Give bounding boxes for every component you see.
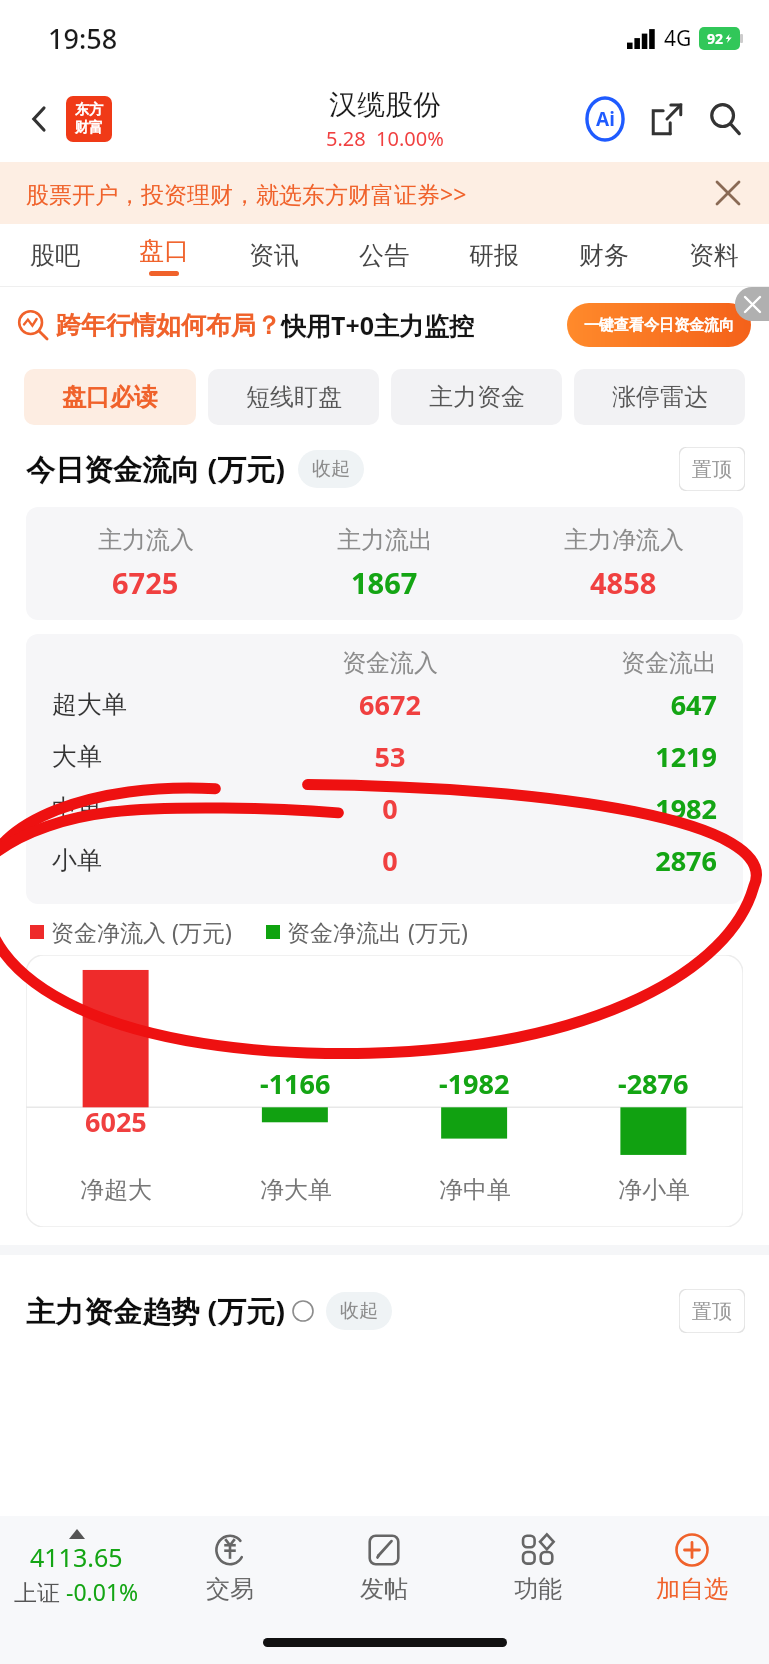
staticText: 19:58: [48, 20, 118, 57]
button[interactable]: 研报: [439, 224, 549, 286]
staticText: 6025: [85, 1103, 147, 1140]
button[interactable]: 发帖: [307, 1516, 461, 1620]
staticText: 6725: [112, 563, 179, 602]
staticText: 小单: [52, 845, 281, 876]
staticText: 647: [499, 686, 717, 723]
staticText: 2876: [499, 842, 717, 879]
staticText: 发帖: [360, 1574, 408, 1604]
staticText: 主力净流入: [564, 525, 684, 555]
staticText: 短线盯盘: [246, 382, 342, 412]
staticText: -1166: [260, 1065, 331, 1102]
staticText: 4113.65: [30, 1540, 123, 1574]
staticText: 92: [707, 29, 724, 48]
staticText: 加自选: [656, 1574, 728, 1604]
staticText: 置顶: [692, 457, 732, 482]
staticText: 1982: [499, 790, 717, 827]
staticText: 涨停雷达: [612, 382, 708, 412]
staticText: 6672: [281, 686, 499, 723]
button[interactable]: 一键查看今日资金流向: [567, 303, 751, 347]
staticText: 大单: [52, 741, 281, 772]
button[interactable]: 功能: [461, 1516, 615, 1620]
staticText: 收起: [340, 1299, 378, 1323]
staticText: 公告: [359, 240, 409, 271]
button[interactable]: Close: [709, 174, 747, 212]
staticText: 资金流入: [281, 648, 499, 678]
staticText: 交易: [206, 1574, 254, 1604]
staticText: 股吧: [30, 240, 80, 271]
staticText: 置顶: [692, 1299, 732, 1324]
staticText: 股票开户，投资理财，就选东方财富证券>>: [26, 178, 467, 209]
staticText: 5.28 10.00%: [326, 125, 444, 152]
button[interactable]: 交易: [153, 1516, 307, 1620]
button[interactable]: Search: [701, 95, 749, 143]
staticText: 资金净流出 (万元): [287, 916, 468, 947]
button[interactable]: 资料: [659, 224, 769, 286]
button[interactable]: 置顶: [679, 1289, 745, 1333]
button[interactable]: 东方财富: [66, 96, 112, 142]
staticText: 4G: [664, 24, 692, 53]
button[interactable]: 股票开户，投资理财，就选东方财富证券>>: [0, 162, 769, 224]
button[interactable]: 主力资金: [391, 369, 562, 425]
staticText: 净超大: [80, 1175, 152, 1205]
staticText: 超大单: [52, 689, 281, 720]
staticText: -2876: [618, 1065, 689, 1102]
button[interactable]: 公告: [329, 224, 439, 286]
button[interactable]: 收起: [298, 450, 364, 488]
staticText: 0: [281, 842, 499, 879]
button[interactable]: 财务: [549, 224, 659, 286]
staticText: 资金净流入 (万元): [51, 916, 232, 947]
staticText: 功能: [514, 1574, 562, 1604]
staticText: 主力资金趋势 (万元): [26, 1291, 286, 1331]
button[interactable]: Share: [643, 95, 691, 143]
staticText: 资金流出: [499, 648, 717, 678]
staticText: -1982: [439, 1065, 510, 1102]
button[interactable]: 置顶: [679, 447, 745, 491]
staticText: 1219: [499, 738, 717, 775]
button[interactable]: 4113.65: [0, 1516, 153, 1620]
staticText: 中单: [52, 793, 281, 824]
button[interactable]: 股吧: [0, 224, 109, 286]
staticText: 净中单: [439, 1175, 511, 1205]
staticText: Ai: [596, 106, 615, 132]
staticText: 净大单: [260, 1175, 332, 1205]
staticText: 主力资金: [429, 382, 525, 412]
staticText: 盘口必读: [62, 382, 158, 412]
button[interactable]: 加自选: [615, 1516, 769, 1620]
staticText: 53: [281, 738, 499, 775]
staticText: 一键查看今日资金流向: [584, 316, 734, 335]
staticText: 收起: [312, 457, 350, 481]
button[interactable]: 涨停雷达: [574, 369, 745, 425]
staticText: 资料: [689, 240, 739, 271]
staticText: 东方: [75, 101, 103, 119]
staticText: 主力流出: [337, 525, 433, 555]
button[interactable]: Back: [18, 97, 62, 141]
staticText: 研报: [469, 240, 519, 271]
staticText: 资讯: [249, 240, 299, 271]
staticText: 跨年行情如何布局？: [56, 310, 281, 341]
staticText: 0: [281, 790, 499, 827]
staticText: 快用T+0主力监控: [281, 308, 475, 342]
staticText: 财富: [75, 119, 103, 137]
staticText: 上证: [14, 1576, 66, 1607]
staticText: 净小单: [618, 1175, 690, 1205]
button[interactable]: Close ad: [735, 287, 769, 321]
staticText: 盘口: [139, 235, 189, 266]
staticText: 财务: [579, 240, 629, 271]
button[interactable]: 收起: [326, 1292, 392, 1330]
button[interactable]: 盘口必读: [24, 369, 196, 425]
button[interactable]: AI assistant: [581, 95, 629, 143]
staticText: 今日资金流向 (万元): [26, 449, 286, 489]
button[interactable]: 资讯: [219, 224, 329, 286]
button[interactable]: 盘口: [109, 224, 219, 286]
staticText: -0.01%: [66, 1576, 139, 1607]
staticText: 4858: [590, 563, 657, 602]
staticText: 1867: [351, 563, 418, 602]
staticText: 主力流入: [98, 525, 194, 555]
staticText: 汉缆股份: [329, 87, 441, 122]
button[interactable]: 短线盯盘: [208, 369, 379, 425]
